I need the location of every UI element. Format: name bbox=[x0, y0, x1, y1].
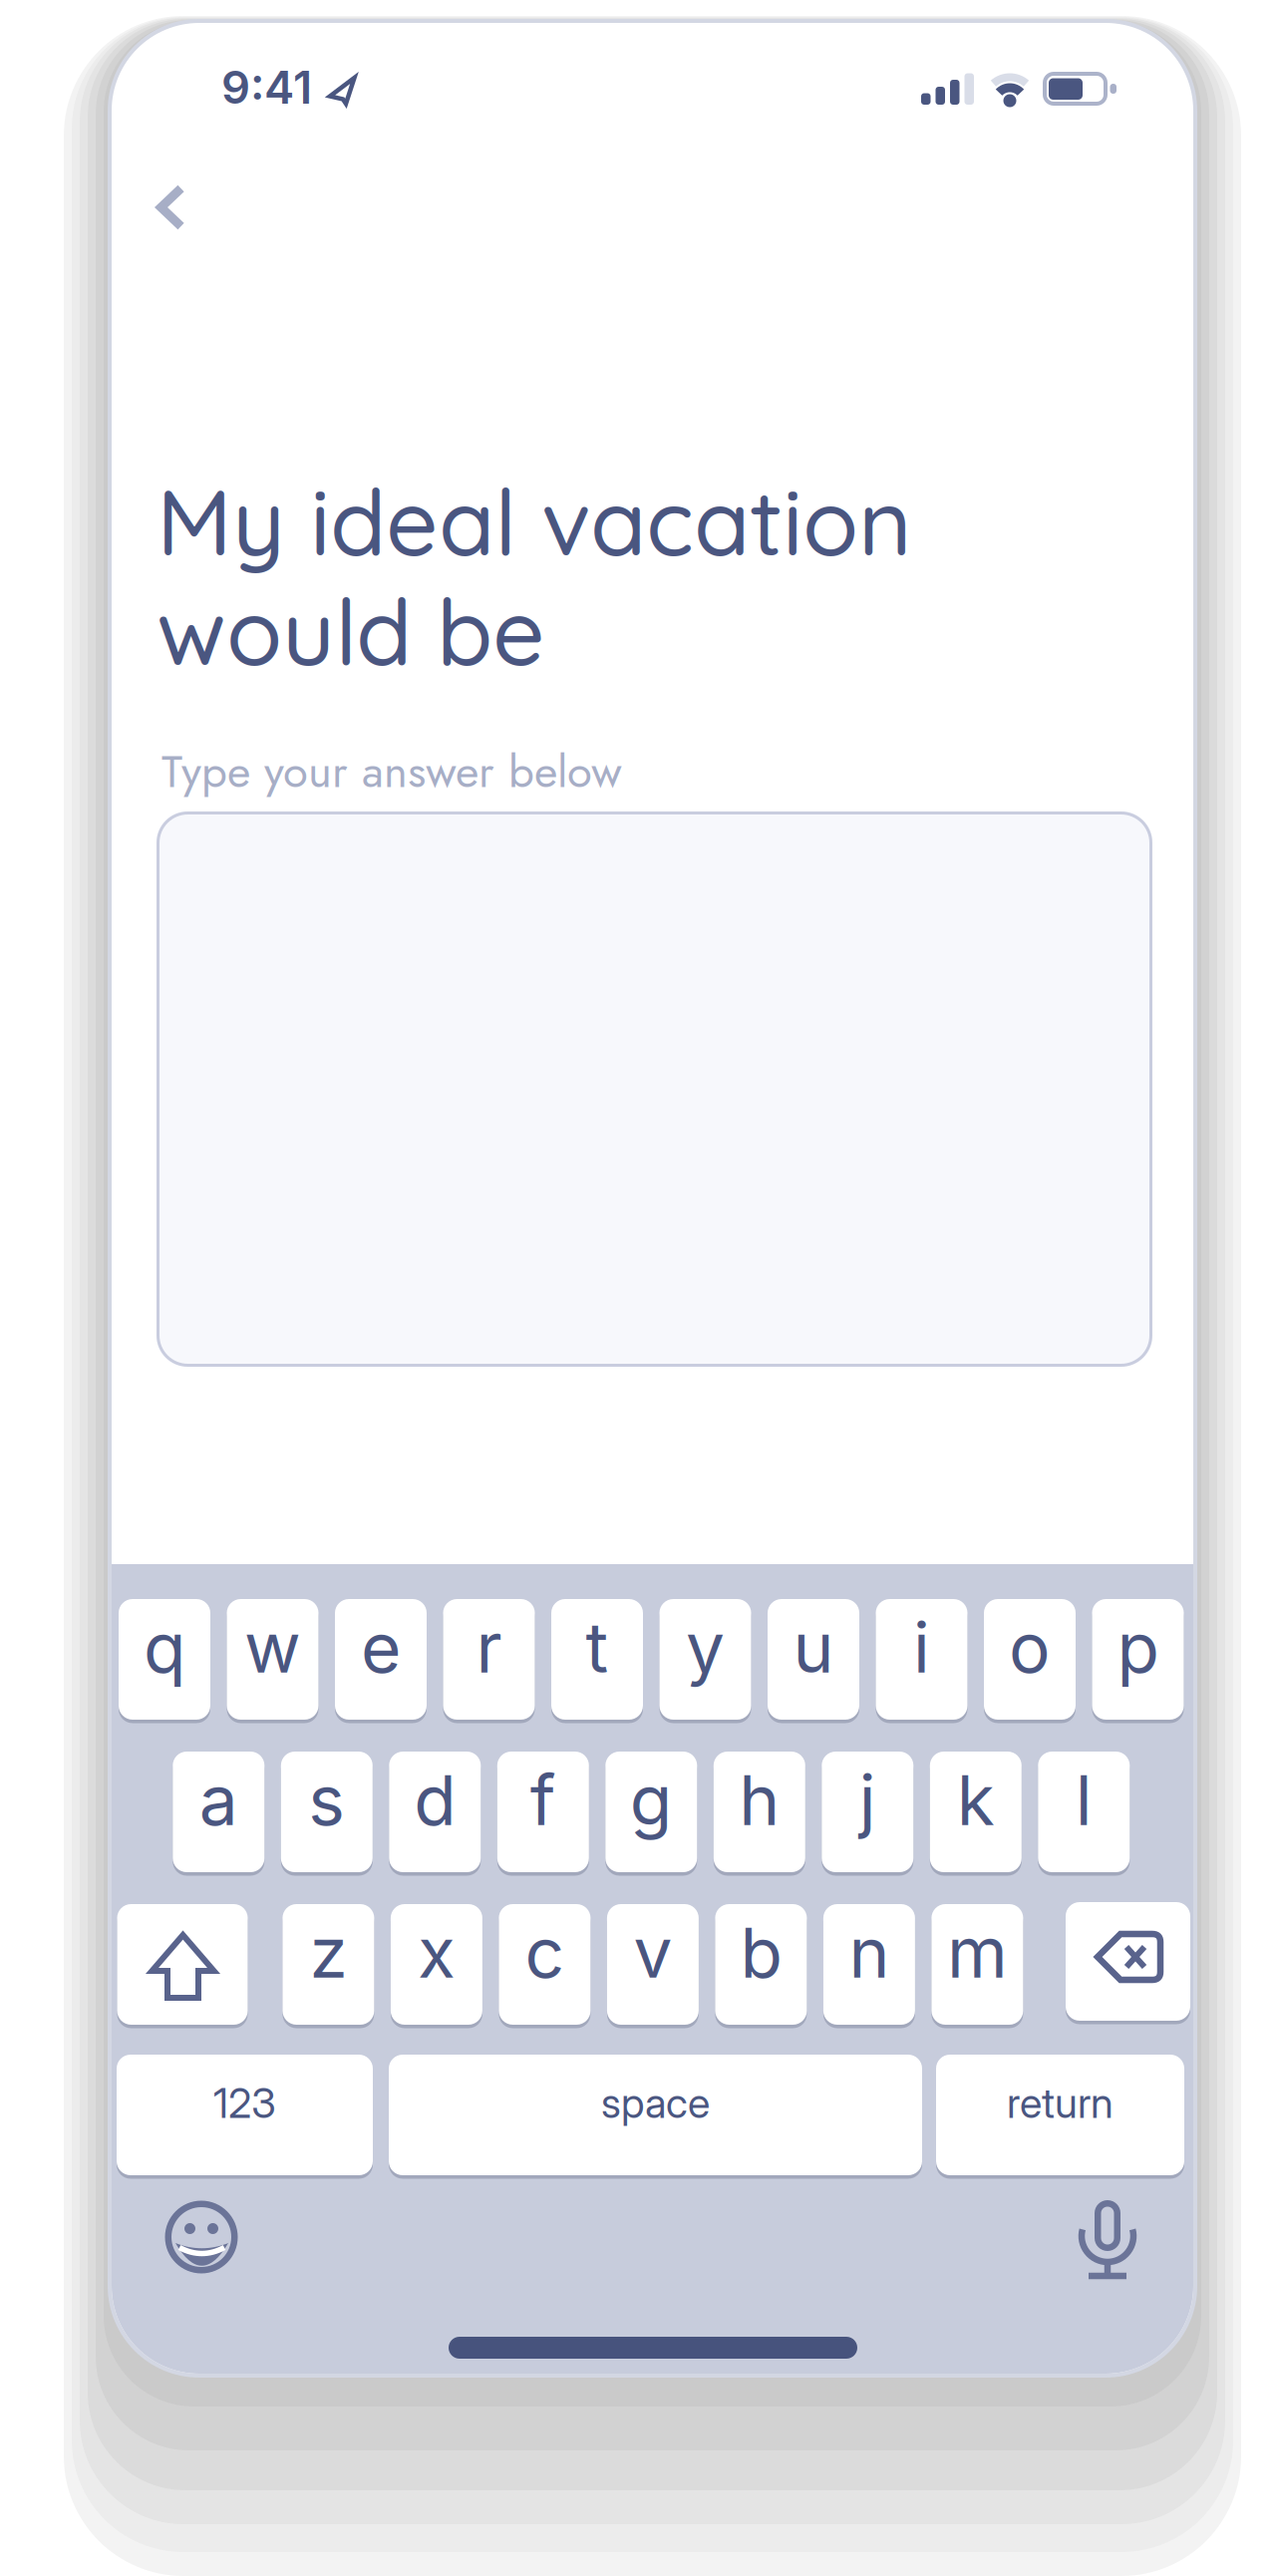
staticText: l bbox=[1075, 1758, 1092, 1842]
staticText: i bbox=[913, 1606, 930, 1689]
staticText: a bbox=[199, 1758, 238, 1842]
button[interactable]: 123 bbox=[117, 2053, 373, 2177]
staticText: u bbox=[793, 1606, 834, 1689]
staticText: space bbox=[601, 2078, 710, 2128]
button[interactable]: v bbox=[607, 1902, 699, 2027]
button[interactable] bbox=[117, 1902, 248, 2027]
staticText: o bbox=[1009, 1606, 1051, 1689]
staticText: n bbox=[849, 1911, 890, 1994]
staticText: b bbox=[740, 1911, 782, 1994]
button[interactable]: f bbox=[497, 1750, 589, 1874]
button[interactable]: x bbox=[391, 1902, 482, 2027]
button[interactable]: l bbox=[1038, 1750, 1130, 1874]
button[interactable]: b bbox=[715, 1902, 807, 2027]
button[interactable]: j bbox=[822, 1750, 913, 1874]
button[interactable]: t bbox=[551, 1597, 643, 1722]
button[interactable] bbox=[157, 811, 1152, 1367]
staticText: h bbox=[739, 1758, 780, 1842]
button[interactable]: c bbox=[499, 1902, 591, 2027]
staticText: t bbox=[586, 1606, 609, 1689]
staticText: d bbox=[414, 1758, 456, 1842]
staticText: z bbox=[309, 1911, 347, 1994]
staticText: 123 bbox=[213, 2078, 276, 2128]
button[interactable] bbox=[165, 2201, 238, 2273]
staticText: q bbox=[144, 1606, 185, 1689]
button[interactable]: u bbox=[768, 1597, 859, 1722]
button[interactable]: w bbox=[227, 1597, 319, 1722]
staticText: m bbox=[947, 1911, 1008, 1994]
staticText: 9:41 bbox=[221, 60, 312, 115]
button[interactable]: k bbox=[930, 1750, 1022, 1874]
staticText: k bbox=[957, 1758, 995, 1842]
staticText: s bbox=[308, 1758, 345, 1842]
staticText: Type your answer below bbox=[161, 739, 622, 804]
staticText: My ideal vacation bbox=[157, 464, 912, 578]
button[interactable]: d bbox=[389, 1750, 481, 1874]
button[interactable] bbox=[1081, 2200, 1134, 2282]
staticText: c bbox=[525, 1911, 565, 1994]
staticText: e bbox=[361, 1606, 401, 1689]
button[interactable]: m bbox=[931, 1902, 1023, 2027]
button[interactable]: n bbox=[823, 1902, 915, 2027]
staticText: f bbox=[530, 1758, 556, 1842]
staticText: r bbox=[476, 1606, 502, 1689]
button[interactable]: space bbox=[389, 2053, 922, 2177]
button[interactable]: r bbox=[443, 1597, 535, 1722]
button[interactable]: g bbox=[605, 1750, 697, 1874]
button[interactable]: p bbox=[1092, 1597, 1184, 1722]
button[interactable]: s bbox=[281, 1750, 373, 1874]
button[interactable]: h bbox=[714, 1750, 805, 1874]
staticText: v bbox=[633, 1911, 672, 1994]
button[interactable]: o bbox=[984, 1597, 1076, 1722]
button[interactable]: e bbox=[335, 1597, 427, 1722]
button[interactable]: i bbox=[876, 1597, 967, 1722]
staticText: return bbox=[1007, 2078, 1114, 2128]
button[interactable]: return bbox=[936, 2053, 1184, 2177]
staticText: w bbox=[244, 1606, 301, 1689]
button[interactable] bbox=[153, 180, 193, 234]
staticText: p bbox=[1117, 1606, 1159, 1689]
button[interactable]: z bbox=[283, 1902, 374, 2027]
button[interactable]: q bbox=[119, 1597, 210, 1722]
button[interactable]: y bbox=[659, 1597, 751, 1722]
staticText: y bbox=[686, 1606, 725, 1689]
button[interactable] bbox=[1066, 1900, 1190, 2023]
button[interactable]: a bbox=[173, 1750, 264, 1874]
staticText: would be bbox=[157, 573, 545, 688]
staticText: j bbox=[859, 1758, 876, 1842]
staticText: g bbox=[630, 1758, 673, 1842]
staticText: x bbox=[418, 1911, 455, 1994]
